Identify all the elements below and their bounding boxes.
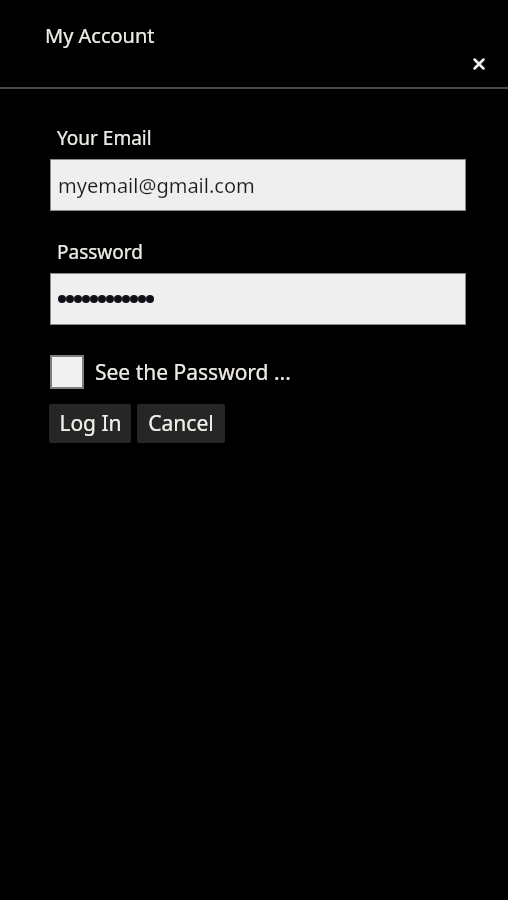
staticText: myemail@gmail.com bbox=[58, 172, 255, 199]
staticText: Password bbox=[57, 239, 143, 265]
staticText: Cancel bbox=[148, 409, 214, 438]
button[interactable]: Close bbox=[458, 43, 500, 85]
button[interactable] bbox=[50, 273, 466, 325]
staticText: Log In bbox=[59, 409, 122, 438]
button[interactable]: Log In bbox=[49, 404, 131, 443]
button[interactable]: Cancel bbox=[137, 404, 225, 443]
staticText: Your Email bbox=[57, 125, 152, 151]
button[interactable]: See the Password ... bbox=[50, 354, 291, 390]
staticText: My Account bbox=[45, 22, 155, 49]
staticText: See the Password ... bbox=[95, 358, 291, 387]
button[interactable]: myemail@gmail.com bbox=[50, 159, 466, 211]
